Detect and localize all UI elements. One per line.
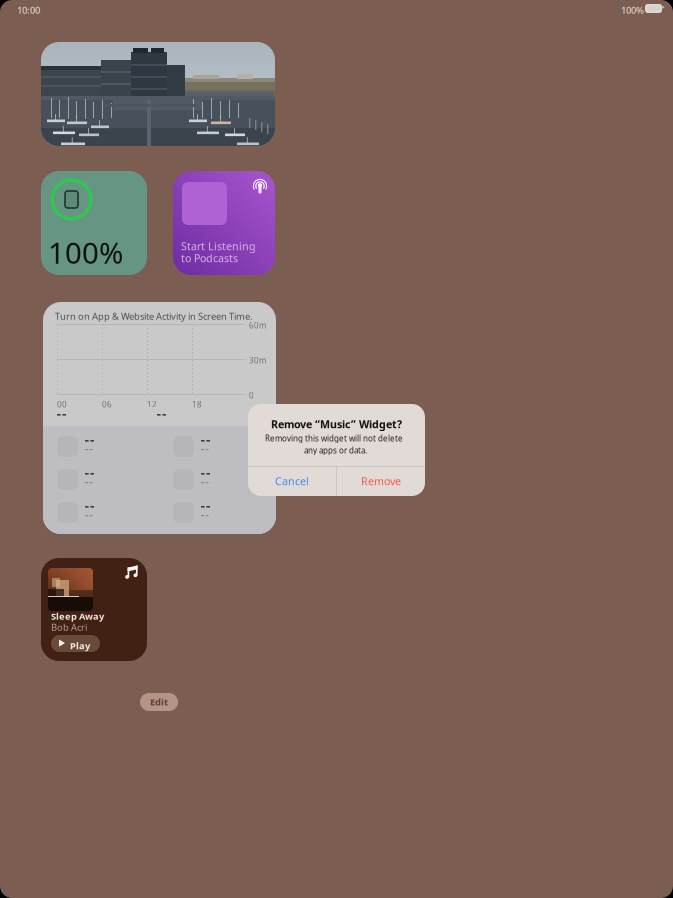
staticText: Removing this widget will not delete <box>265 433 403 444</box>
staticText: 12 <box>147 399 157 410</box>
staticText: Bob Acri <box>51 621 87 633</box>
button[interactable]: Edit <box>140 693 178 711</box>
staticText: Sleep Away <box>51 610 104 622</box>
staticText: 18 <box>192 399 202 410</box>
button[interactable]: Cancel <box>248 466 336 496</box>
staticText: Remove <box>361 474 401 488</box>
staticText: 00 <box>57 399 67 410</box>
staticText: Edit <box>150 696 168 708</box>
staticText: Remove “Music” Widget? <box>271 417 402 431</box>
staticText: any apps or data. <box>304 445 367 456</box>
staticText: 10:00 <box>17 4 40 16</box>
staticText: 100% <box>48 233 123 272</box>
staticText: Play <box>70 639 90 652</box>
staticText: Cancel <box>275 474 309 488</box>
staticText: Turn on App & Website Activity in Screen… <box>55 310 253 322</box>
staticText: 0 <box>249 390 254 401</box>
button[interactable]: Play <box>51 635 100 652</box>
staticText: Start Listening <box>181 239 256 253</box>
button[interactable]: Remove <box>337 466 425 496</box>
staticText: 06 <box>102 399 112 410</box>
staticText: 60m <box>249 320 266 331</box>
staticText: 30m <box>249 355 266 366</box>
staticText: 100% <box>621 4 644 16</box>
staticText: to Podcasts <box>181 251 238 265</box>
